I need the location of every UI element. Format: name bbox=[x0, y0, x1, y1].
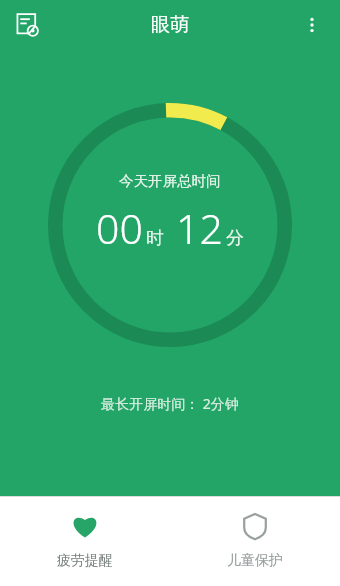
button[interactable]: 儿童保护 bbox=[170, 497, 340, 586]
staticText: 分 bbox=[226, 227, 244, 250]
staticText: 时 bbox=[146, 227, 164, 250]
staticText: 眼萌 bbox=[151, 13, 189, 37]
button[interactable]: 疲劳提醒 bbox=[0, 497, 170, 586]
staticText: 今天开屏总时间 bbox=[119, 172, 221, 190]
staticText: 12 bbox=[176, 200, 223, 256]
staticText: 疲劳提醒 bbox=[57, 552, 113, 570]
staticText: 最长开屏时间： 2分钟 bbox=[101, 394, 239, 413]
button[interactable]: More options bbox=[292, 5, 332, 45]
staticText: 儿童保护 bbox=[227, 552, 283, 570]
button[interactable]: Report bbox=[10, 7, 46, 43]
staticText: 00 bbox=[96, 200, 143, 256]
